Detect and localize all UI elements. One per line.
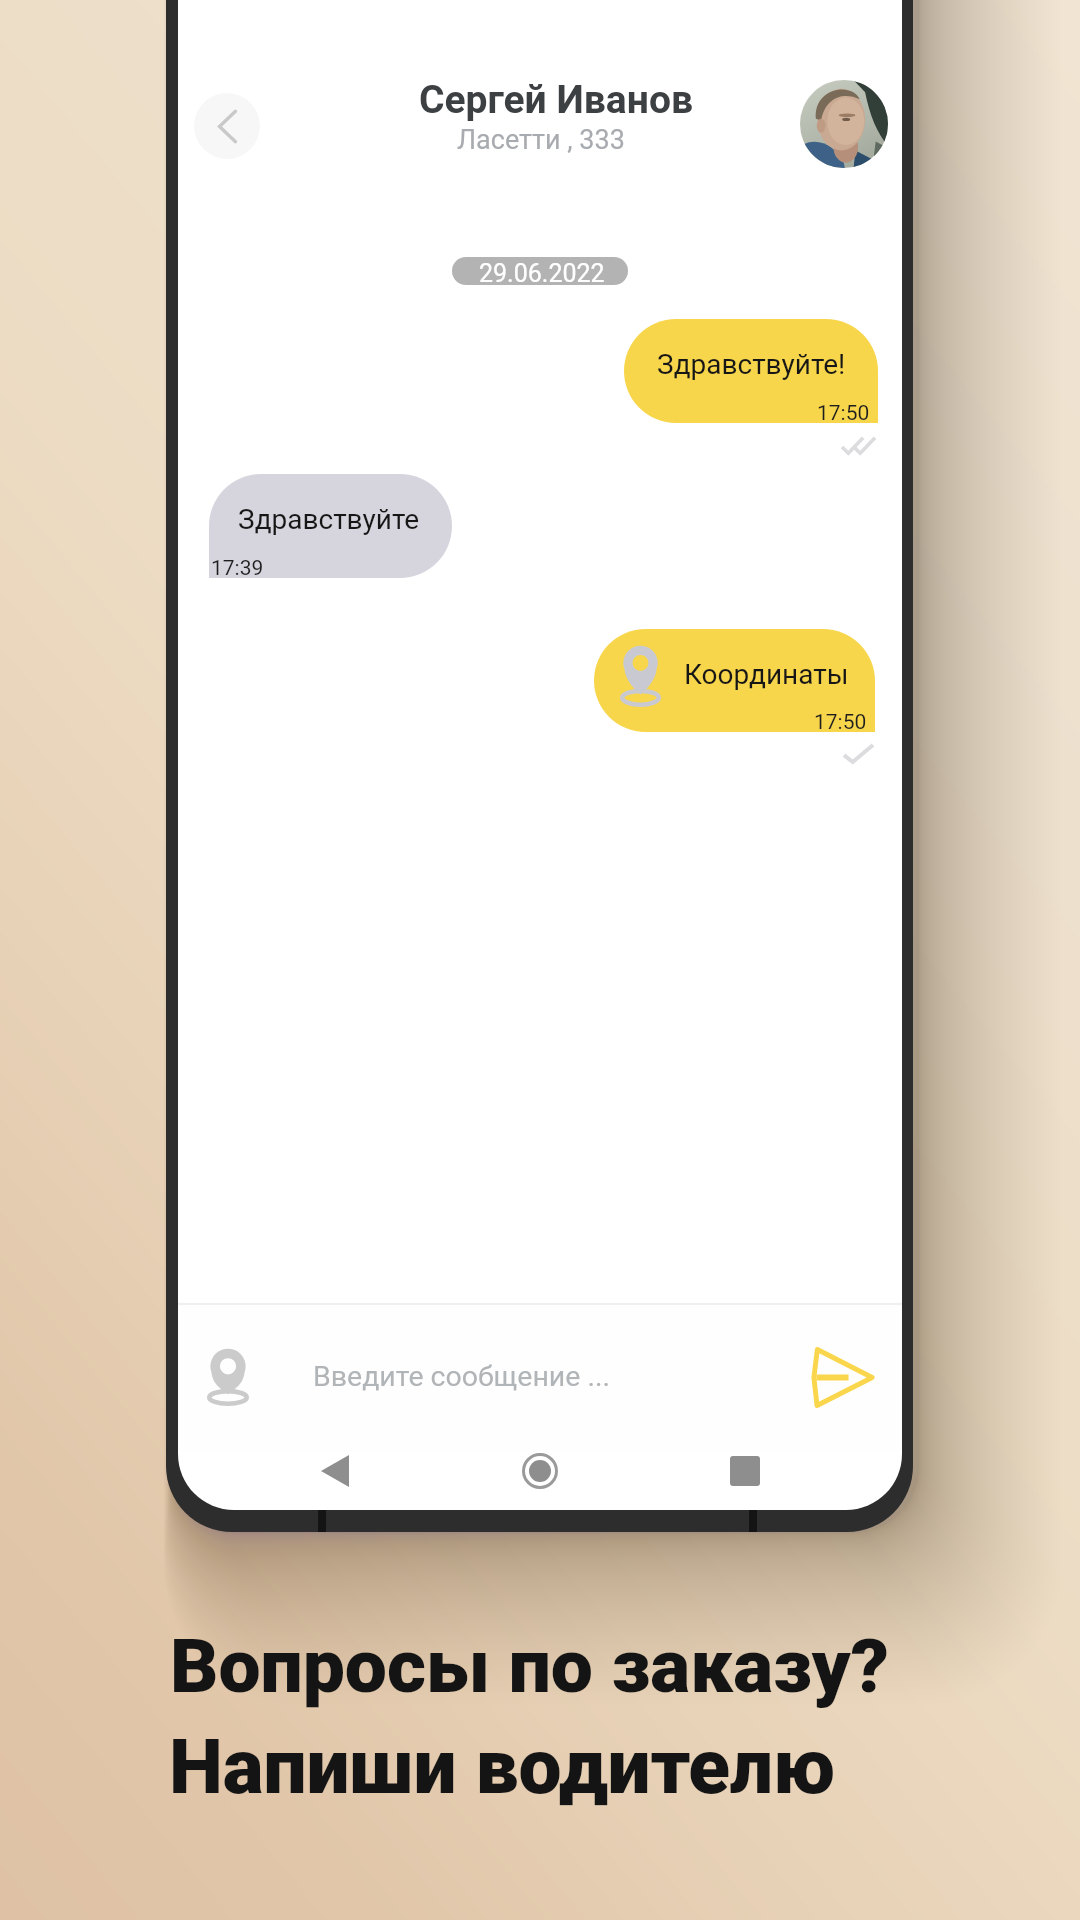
button[interactable]: Recent apps xyxy=(715,1441,775,1501)
staticText: 17:50 xyxy=(817,401,870,423)
button[interactable]: Здравствуйте xyxy=(209,474,452,578)
staticText: Вопросы по заказу? xyxy=(170,1622,889,1710)
staticText: Напиши водителю xyxy=(169,1722,835,1812)
staticText: Ласетти , 333 xyxy=(457,124,625,156)
button[interactable]: Back xyxy=(194,93,260,159)
staticText: Введите сообщение ... xyxy=(313,1360,611,1393)
button[interactable]: Navigate back xyxy=(305,1441,365,1501)
staticText: 29.06.2022 xyxy=(479,259,605,285)
staticText: Координаты xyxy=(684,658,849,691)
button[interactable]: Координаты xyxy=(594,629,875,732)
staticText: 17:50 xyxy=(814,710,867,732)
button[interactable]: Здравствуйте! xyxy=(624,319,878,423)
button[interactable]: Attach location xyxy=(197,1338,259,1416)
staticText: Сергей Иванов xyxy=(419,77,694,123)
button[interactable]: Send message xyxy=(804,1338,882,1416)
button[interactable]: Home xyxy=(510,1441,570,1501)
staticText: Здравствуйте! xyxy=(657,348,846,381)
staticText: Здравствуйте xyxy=(238,503,420,536)
staticText: 17:39 xyxy=(211,556,264,578)
button[interactable]: Contact photo xyxy=(800,80,888,168)
button[interactable]: 29.06.2022 xyxy=(452,257,628,285)
